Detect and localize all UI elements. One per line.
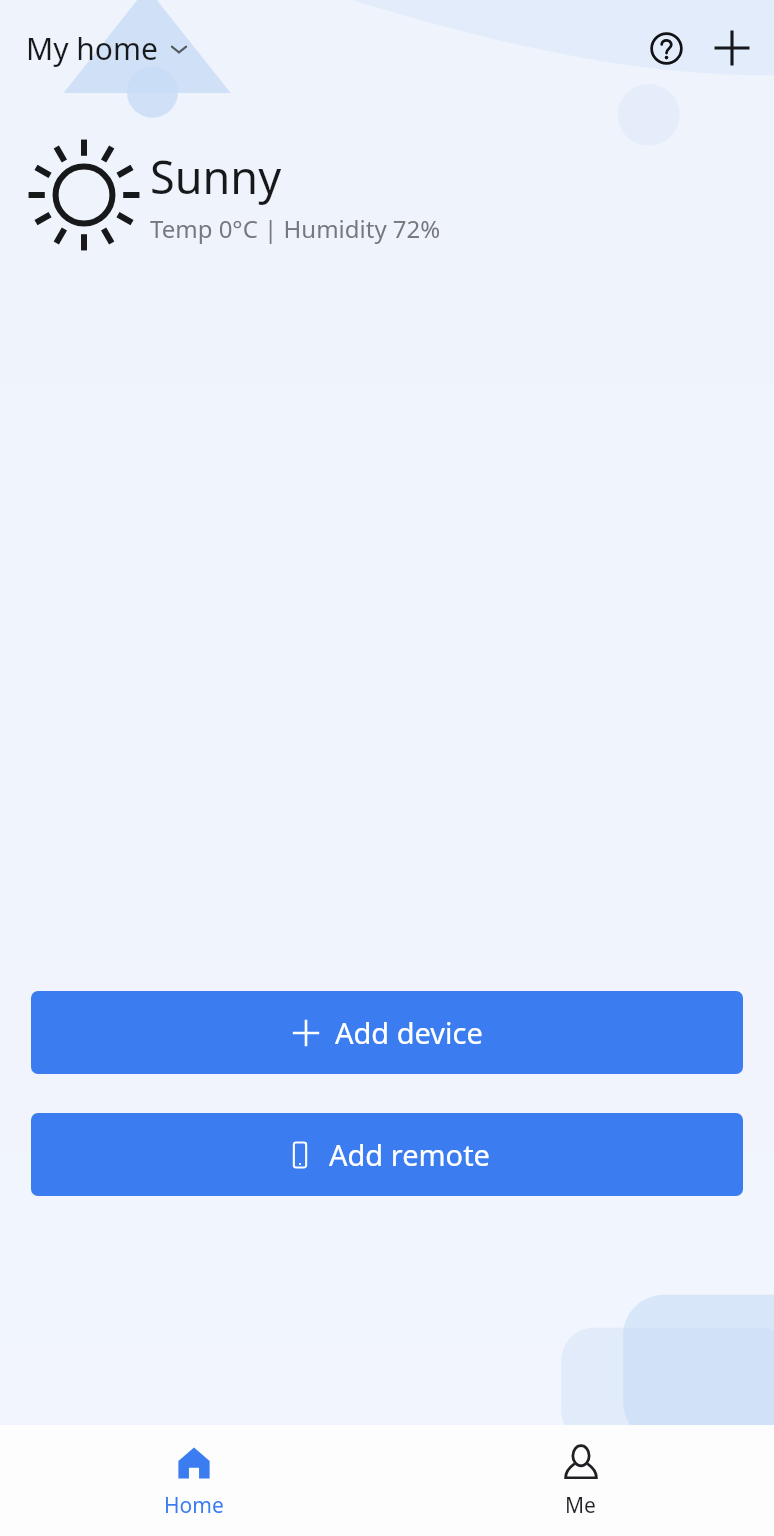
button[interactable]: Me bbox=[387, 1425, 774, 1536]
button[interactable]: Home bbox=[0, 1425, 387, 1536]
staticText: My home bbox=[26, 28, 158, 69]
button[interactable]: Add device bbox=[31, 991, 743, 1074]
staticText: Add device bbox=[335, 1013, 483, 1052]
staticText: Home bbox=[164, 1491, 224, 1520]
button[interactable]: Add remote bbox=[31, 1113, 743, 1196]
staticText: Add remote bbox=[329, 1135, 490, 1174]
staticText: Temp 0°C | Humidity 72% bbox=[150, 212, 441, 245]
staticText: Me bbox=[565, 1491, 596, 1520]
button[interactable]: My home bbox=[20, 22, 195, 75]
button[interactable]: Help bbox=[638, 20, 694, 76]
button[interactable]: Add bbox=[704, 20, 760, 76]
staticText: Sunny bbox=[150, 146, 282, 207]
